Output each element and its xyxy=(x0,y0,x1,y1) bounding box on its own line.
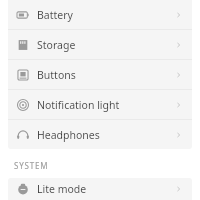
button[interactable]: Headphones xyxy=(8,120,192,149)
other: Open xyxy=(174,10,184,20)
staticText: Buttons xyxy=(37,68,174,82)
staticText: Storage xyxy=(37,38,174,52)
staticText: SYSTEM xyxy=(14,160,49,171)
button[interactable]: Storage xyxy=(8,30,192,59)
button[interactable]: Notification light xyxy=(8,90,192,119)
staticText: Headphones xyxy=(37,128,174,142)
button[interactable]: Buttons xyxy=(8,60,192,89)
staticText: Lite mode xyxy=(37,182,174,196)
staticText: Battery xyxy=(37,8,174,22)
other: Open xyxy=(174,70,184,80)
other: Open xyxy=(174,184,184,194)
staticText: Notification light xyxy=(37,98,174,112)
button[interactable]: Battery xyxy=(8,0,192,29)
other: Open xyxy=(174,100,184,110)
button[interactable]: Lite mode xyxy=(8,178,192,200)
other: Open xyxy=(174,130,184,140)
other: Open xyxy=(174,40,184,50)
